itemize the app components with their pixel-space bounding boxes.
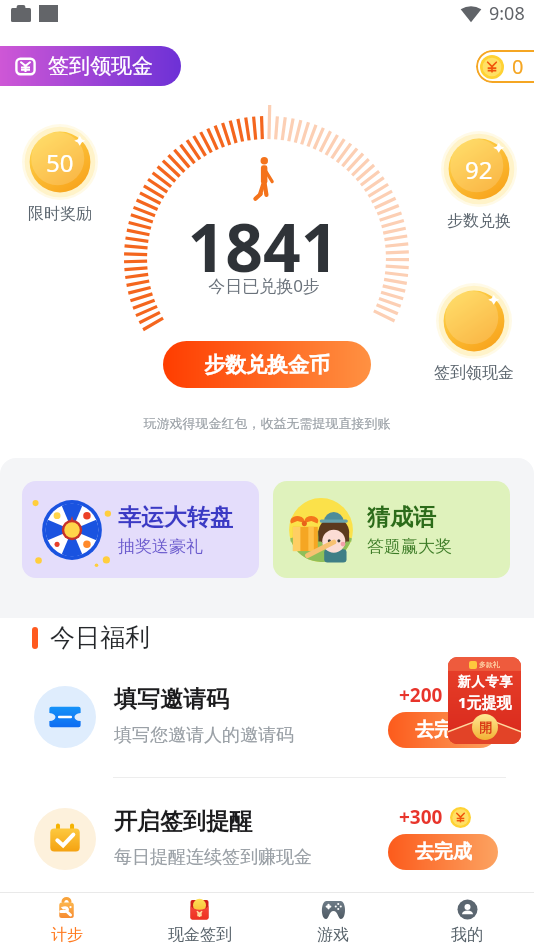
staticText: 去完成 (415, 718, 472, 742)
button[interactable]: 签到领现金 (0, 46, 181, 86)
staticText: 签到领现金 (48, 53, 153, 79)
button[interactable]: 游戏 (266, 893, 400, 949)
button[interactable]: 今日福利 (32, 622, 150, 653)
staticText: 1841 (0, 201, 530, 291)
staticText: 1元提现 (458, 692, 512, 712)
button[interactable]: 步数兑换金币 (163, 341, 371, 388)
staticText: 步数兑换金币 (204, 352, 330, 378)
staticText: 9:08 (489, 1, 525, 26)
staticText: 幸运大转盘 (118, 503, 233, 532)
staticText: 今日福利 (50, 622, 150, 653)
staticText: 限时奖励 (28, 204, 92, 224)
staticText: +200 (399, 682, 443, 708)
button[interactable]: 新人专享 1元提现 (448, 657, 521, 744)
staticText: 我的 (451, 925, 483, 945)
staticText: 现金签到 (168, 925, 232, 945)
staticText: 猜成语 (367, 503, 436, 532)
staticText: 50 (46, 146, 74, 179)
staticText: 计步 (51, 925, 83, 945)
staticText: 填写您邀请人的邀请码 (114, 724, 294, 747)
button[interactable]: 开启签到提醒 (0, 798, 534, 880)
staticText: 签到领现金 (434, 363, 514, 383)
staticText: 游戏 (317, 925, 349, 945)
staticText: 多款礼 (479, 660, 500, 669)
button[interactable]: 填写邀请码 (0, 676, 534, 758)
staticText: 开启签到提醒 (114, 807, 252, 836)
button[interactable]: 去完成 (388, 712, 498, 748)
staticText: 新人专享 (457, 673, 513, 689)
staticText: 去完成 (415, 840, 472, 864)
button[interactable]: 去完成 (388, 834, 498, 870)
button[interactable]: 0 (476, 50, 534, 83)
staticText: 92 (465, 153, 493, 186)
button[interactable]: 92 (437, 131, 521, 231)
button[interactable]: 签到领现金 (432, 283, 516, 383)
staticText: 填写邀请码 (114, 685, 229, 714)
button[interactable]: 现金签到 (133, 893, 266, 949)
staticText: 每日提醒连续签到赚现金 (114, 846, 312, 869)
button[interactable]: 我的 (400, 893, 534, 949)
staticText: 步数兑换 (447, 211, 511, 231)
staticText: 抽奖送豪礼 (118, 536, 203, 557)
button[interactable]: 50 (18, 124, 102, 224)
staticText: 玩游戏得现金红包，收益无需提现直接到账 (0, 415, 534, 431)
button[interactable]: 计步 (0, 893, 133, 949)
button[interactable]: 幸运大转盘 (22, 481, 259, 578)
staticText: 今日已兑换0步 (0, 274, 531, 297)
button[interactable]: 猜成语 (273, 481, 510, 578)
staticText: +300 (399, 804, 443, 830)
staticText: 0 (512, 53, 524, 80)
staticText: 開 (479, 719, 492, 735)
staticText: 答题赢大奖 (367, 536, 452, 557)
